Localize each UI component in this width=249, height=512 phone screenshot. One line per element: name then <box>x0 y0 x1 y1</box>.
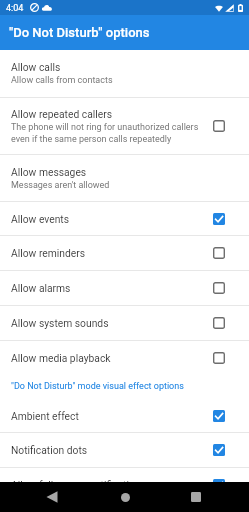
staticText: Allow system sounds <box>11 317 109 329</box>
staticText: "Do Not Disturb" mode visual effect opti… <box>11 381 184 392</box>
staticText: Allow full screen notifications <box>11 479 146 491</box>
staticText: Messages aren't allowed <box>11 180 110 191</box>
button[interactable]: Allow full screen notifications <box>0 468 249 502</box>
staticText: Allow repeated callers <box>11 108 113 120</box>
staticText: Allow calls from contacts <box>11 75 113 86</box>
button[interactable]: Allow repeated callers <box>0 98 249 154</box>
button[interactable]: Allow reminders <box>0 236 249 270</box>
staticText: Allow alarms <box>11 282 71 294</box>
staticText: Allow media playback <box>11 352 111 364</box>
button[interactable]: Allow calls <box>0 50 249 97</box>
button[interactable]: Allow alarms <box>0 271 249 305</box>
staticText: Allow messages <box>11 166 87 178</box>
button[interactable]: Allow events <box>0 202 249 235</box>
button[interactable]: Allow media playback <box>0 341 249 374</box>
button[interactable]: Allow messages <box>0 155 249 201</box>
staticText: The phone will not ring for unauthorized… <box>11 122 199 144</box>
staticText: Allow reminders <box>11 247 86 259</box>
button[interactable]: Recents <box>183 484 209 510</box>
staticText: Ambient effect <box>11 410 79 422</box>
staticText: 4:04 <box>6 3 24 14</box>
staticText: "Do Not Disturb" options <box>9 25 150 40</box>
staticText: Allow events <box>11 213 70 225</box>
staticText: Allow calls <box>11 61 61 73</box>
button[interactable]: Notification dots <box>0 433 249 467</box>
staticText: Notification dots <box>11 444 88 456</box>
button[interactable]: Allow system sounds <box>0 306 249 340</box>
button[interactable]: Home <box>112 484 138 510</box>
button[interactable]: Ambient effect <box>0 399 249 432</box>
button[interactable]: Back <box>39 484 65 510</box>
